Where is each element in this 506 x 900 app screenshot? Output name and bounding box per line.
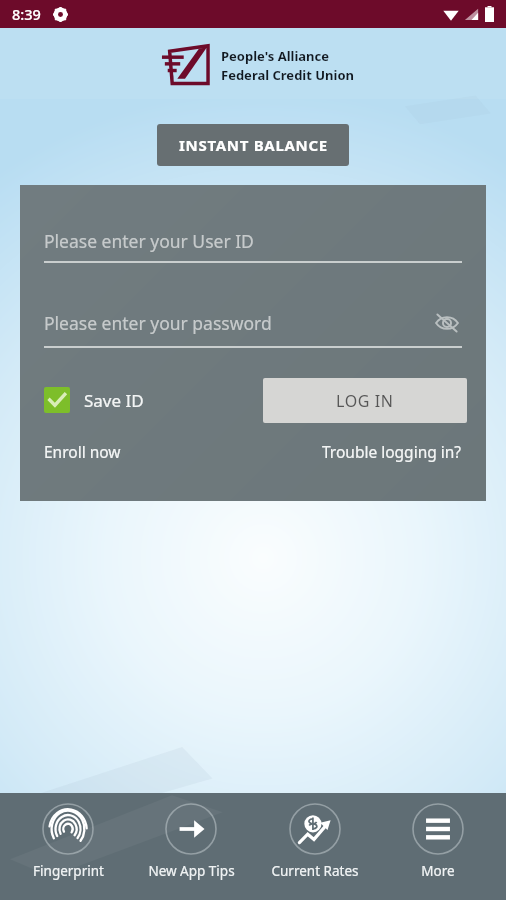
button[interactable]: Enroll now (44, 441, 121, 462)
staticText: Fingerprint (33, 862, 104, 880)
staticText: Please enter your password (44, 311, 272, 335)
staticText: 8:39 (12, 4, 41, 24)
button[interactable]: New App Tips (135, 803, 247, 880)
button[interactable]: LOG IN (263, 378, 467, 423)
button[interactable]: Save ID (44, 387, 144, 413)
button[interactable]: Fingerprint (12, 803, 124, 880)
staticText: New App Tips (148, 862, 235, 880)
button[interactable]: More (382, 803, 494, 880)
staticText: People's Alliance (221, 47, 329, 65)
button[interactable]: Show password (432, 308, 462, 338)
staticText: More (421, 862, 455, 880)
staticText: Trouble logging in? (322, 441, 462, 462)
button[interactable]: Trouble logging in? (322, 441, 462, 462)
button[interactable]: Current Rates (259, 803, 371, 880)
staticText: Current Rates (271, 862, 359, 880)
button[interactable]: INSTANT BALANCE (157, 124, 349, 166)
staticText: Enroll now (44, 441, 121, 462)
staticText: Federal Credit Union (221, 66, 354, 84)
staticText: Please enter your User ID (44, 229, 254, 253)
staticText: INSTANT BALANCE (179, 135, 328, 155)
staticText: Save ID (84, 389, 144, 412)
staticText: LOG IN (336, 390, 394, 412)
